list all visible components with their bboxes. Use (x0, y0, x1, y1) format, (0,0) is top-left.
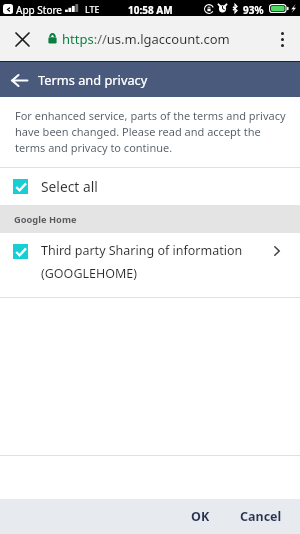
staticText: Cancel (240, 508, 282, 525)
staticText: Terms and privacy (38, 71, 148, 88)
staticText: 93% (243, 3, 264, 17)
staticText: App Store (16, 3, 63, 17)
button[interactable]: Select all (0, 168, 300, 205)
button[interactable]: More options (264, 21, 300, 57)
staticText: LTE (85, 3, 100, 15)
button[interactable]: Cancel (226, 501, 296, 532)
staticText: For enhanced service, parts of the terms… (15, 108, 286, 155)
staticText: Google Home (14, 213, 77, 226)
button[interactable]: Close (3, 20, 41, 58)
staticText: https://us.m.lgaccount.com (62, 30, 230, 48)
staticText: (GOOGLEHOME) (41, 265, 138, 282)
button[interactable]: OK (177, 501, 224, 532)
button[interactable]: Back (10, 71, 28, 89)
button[interactable]: Third party Sharing of information (0, 233, 300, 297)
staticText: OK (191, 508, 210, 525)
staticText: 10:58 AM (128, 3, 173, 17)
staticText: Third party Sharing of information (41, 242, 243, 259)
staticText: Select all (41, 177, 98, 196)
